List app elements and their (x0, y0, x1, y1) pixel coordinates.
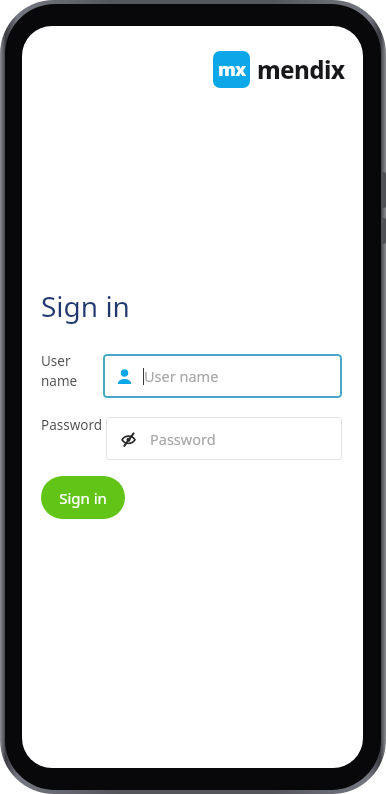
staticText: Sign in (59, 488, 107, 508)
staticText: Password (41, 416, 103, 434)
staticText: mx (218, 57, 246, 82)
button[interactable]: mx (213, 51, 345, 88)
staticText: User name (41, 352, 78, 390)
staticText: User name (144, 366, 219, 386)
other: User (117, 369, 132, 384)
button[interactable]: User (103, 354, 342, 398)
button[interactable]: Sign in (41, 476, 125, 519)
button[interactable]: Show password (106, 417, 342, 460)
staticText: Password (150, 429, 216, 449)
staticText: Sign in (41, 287, 130, 325)
staticText: mendix (257, 53, 345, 86)
other: Show password (121, 432, 136, 447)
